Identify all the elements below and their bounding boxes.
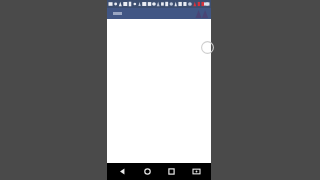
button[interactable]: Home bbox=[137, 163, 157, 180]
button[interactable]: Title bbox=[107, 8, 211, 19]
button[interactable]: Screenshot bbox=[186, 163, 206, 180]
button[interactable]: Back bbox=[112, 163, 132, 180]
button[interactable]: Recents bbox=[161, 163, 181, 180]
